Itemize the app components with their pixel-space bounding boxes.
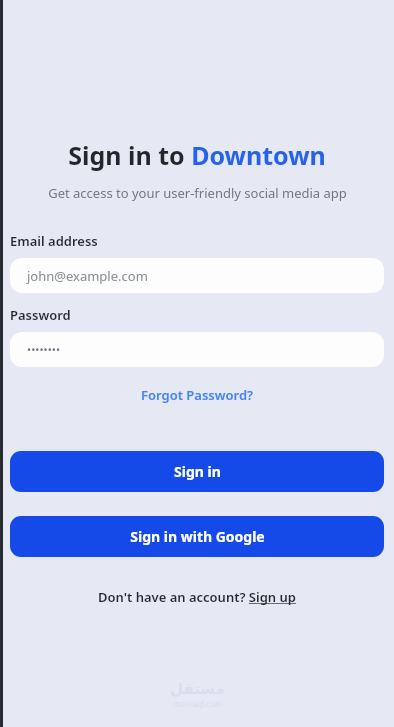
staticText: mostaql.com: [173, 698, 223, 709]
staticText: ••••••••: [27, 342, 61, 357]
staticText: Email address: [10, 232, 98, 250]
staticText: Sign in to Downtown: [68, 138, 326, 172]
staticText: Get access to your user-friendly social …: [48, 184, 347, 202]
button[interactable]: Sign in with Google: [10, 516, 384, 557]
button[interactable]: john@example.com: [10, 258, 384, 293]
staticText: مستقل: [170, 680, 225, 697]
staticText: Sign in: [174, 462, 221, 481]
staticText: Sign in with Google: [130, 527, 265, 546]
button[interactable]: Sign in: [10, 451, 384, 492]
staticText: Password: [10, 306, 71, 324]
staticText: john@example.com: [27, 267, 148, 285]
staticText: Forgot Password?: [141, 386, 254, 404]
button[interactable]: Forgot Password?: [135, 383, 260, 407]
button[interactable]: ••••••••: [10, 332, 384, 367]
button[interactable]: Don't have an account? Sign up: [92, 585, 302, 609]
staticText: Don't have an account? Sign up: [98, 588, 296, 606]
